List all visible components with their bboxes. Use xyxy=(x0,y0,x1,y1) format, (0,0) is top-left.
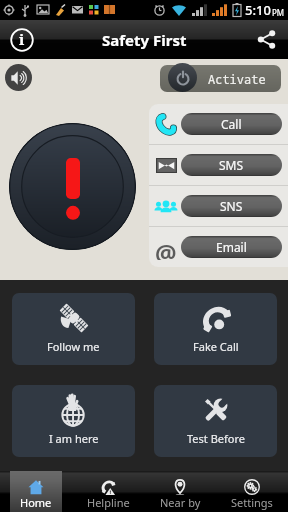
staticText: Settings xyxy=(231,495,273,510)
staticText: Activate xyxy=(208,71,266,87)
staticText: Home xyxy=(20,495,52,510)
button[interactable]: Info xyxy=(0,20,44,59)
staticText: Helpline xyxy=(87,495,130,510)
staticText: Email xyxy=(216,239,247,255)
button[interactable]: Settings xyxy=(226,471,278,512)
button[interactable]: Near by xyxy=(154,471,206,512)
staticText: i xyxy=(19,29,25,49)
staticText: Fake Call xyxy=(193,339,239,354)
button[interactable]: SMS xyxy=(149,145,288,185)
button[interactable]: SNS xyxy=(149,186,288,226)
staticText: @ xyxy=(155,236,177,260)
staticText: I am here xyxy=(49,431,99,446)
button[interactable]: Share xyxy=(244,20,288,59)
button[interactable]: @ xyxy=(149,227,288,267)
staticText: SMS xyxy=(219,157,244,173)
button[interactable]: Helpline xyxy=(82,471,134,512)
staticText: SNS xyxy=(220,198,243,214)
staticText: Test Before xyxy=(187,431,245,446)
button[interactable]: Alarm xyxy=(9,123,136,250)
staticText: Near by xyxy=(160,495,201,510)
button[interactable]: Sound xyxy=(5,64,32,91)
button[interactable]: Home xyxy=(10,471,62,512)
staticText: 5:10 xyxy=(245,1,271,19)
button[interactable]: Follow me xyxy=(12,293,135,365)
button[interactable]: Activate xyxy=(160,59,281,95)
staticText: Safety First xyxy=(102,30,187,50)
button[interactable]: I am here xyxy=(12,385,135,457)
staticText: PM xyxy=(272,7,285,18)
button[interactable]: Call xyxy=(149,104,288,144)
button[interactable]: Fake Call xyxy=(154,293,277,365)
button[interactable]: Test Before xyxy=(154,385,277,457)
staticText: Call xyxy=(221,116,242,132)
staticText: Follow me xyxy=(47,339,100,354)
